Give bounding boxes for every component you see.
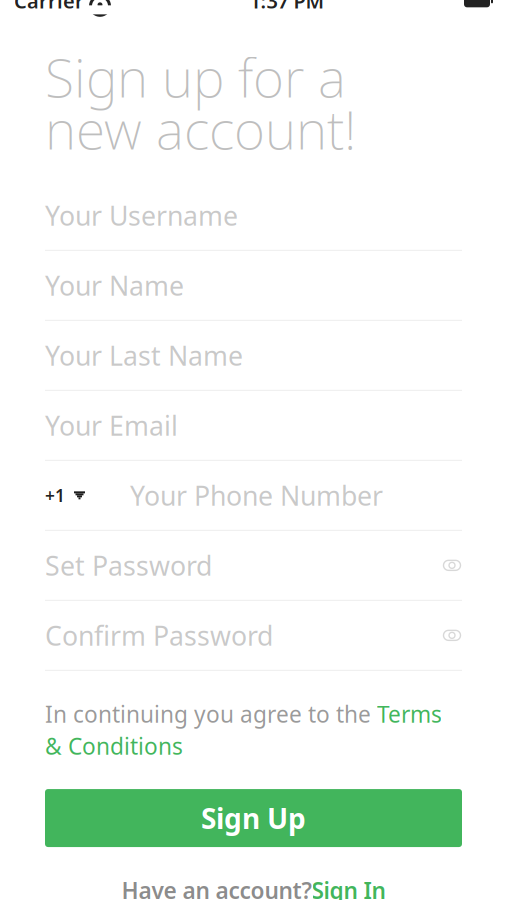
staticText: +1: [45, 484, 65, 507]
staticText: Your Name: [45, 268, 184, 303]
button[interactable]: Country code, plus 1: [45, 461, 85, 530]
button[interactable]: In continuing you agree to the: [0, 671, 507, 761]
staticText: Sign In: [311, 875, 385, 900]
staticText: Terms: [377, 699, 442, 729]
button[interactable]: Have an account?: [0, 847, 507, 900]
staticText: Your Username: [45, 198, 238, 233]
staticText: Your Phone Number: [130, 478, 383, 513]
staticText: Sign Up: [201, 799, 306, 837]
button[interactable]: Sign Up: [45, 789, 462, 847]
staticText: In continuing you agree to the: [45, 699, 377, 729]
staticText: new account!: [45, 93, 356, 164]
staticText: Confirm Password: [45, 618, 273, 653]
staticText: Your Last Name: [45, 338, 243, 373]
staticText: Your Email: [45, 408, 178, 443]
staticText: Carrier: [14, 0, 84, 14]
staticText: Have an account?: [121, 875, 311, 900]
staticText: Sign up for a: [45, 41, 346, 112]
staticText: & Conditions: [45, 731, 183, 761]
staticText: Set Password: [45, 548, 212, 583]
staticText: 1:37 PM: [249, 0, 324, 14]
